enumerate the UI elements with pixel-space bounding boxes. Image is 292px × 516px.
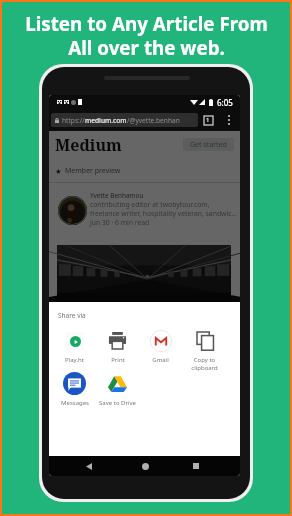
staticText: Messages <box>61 399 89 407</box>
staticText: jun 30 · 6 min read <box>90 218 150 227</box>
button[interactable]: Save to Drive <box>96 372 139 407</box>
staticText: Listen to Any Article From All over the … <box>25 11 268 61</box>
button[interactable]: Messages <box>53 372 96 407</box>
button[interactable]: Get started <box>183 138 234 151</box>
staticText: /@yvette.benhan <box>127 116 180 125</box>
button[interactable]: More options <box>221 112 237 128</box>
staticText: ★ <box>55 167 62 176</box>
staticText: Share via <box>58 311 86 320</box>
button[interactable]: Back <box>79 456 99 476</box>
staticText: Save to Drive <box>99 399 136 407</box>
staticText: freelance writer, hospitality veteran, s… <box>90 209 237 218</box>
button[interactable]: Tabs <box>200 112 216 128</box>
staticText: medium.com <box>85 116 127 125</box>
button[interactable]: Recent apps <box>186 456 206 476</box>
button[interactable]: Print <box>96 329 139 364</box>
staticText: 1 <box>206 116 210 124</box>
staticText: https:// <box>62 116 85 125</box>
button[interactable]: Home <box>135 456 155 476</box>
button[interactable]: Play.ht <box>53 329 96 364</box>
staticText: Get started <box>190 140 227 150</box>
staticText: Gmail <box>152 356 169 364</box>
staticText: Yvette Benhamou <box>90 191 144 200</box>
button[interactable]: Copy to clipboard <box>183 329 226 372</box>
staticText: Print <box>111 356 125 364</box>
staticText: Copy to clipboard <box>191 356 218 372</box>
staticText: Member preview <box>65 166 121 176</box>
staticText: 6:05 <box>217 97 233 108</box>
staticText: Play.ht <box>65 356 84 364</box>
button[interactable]: Gmail <box>139 329 182 364</box>
staticText: contributing editor at twobytour.com, <box>90 200 210 209</box>
staticText: Medium <box>55 134 122 156</box>
